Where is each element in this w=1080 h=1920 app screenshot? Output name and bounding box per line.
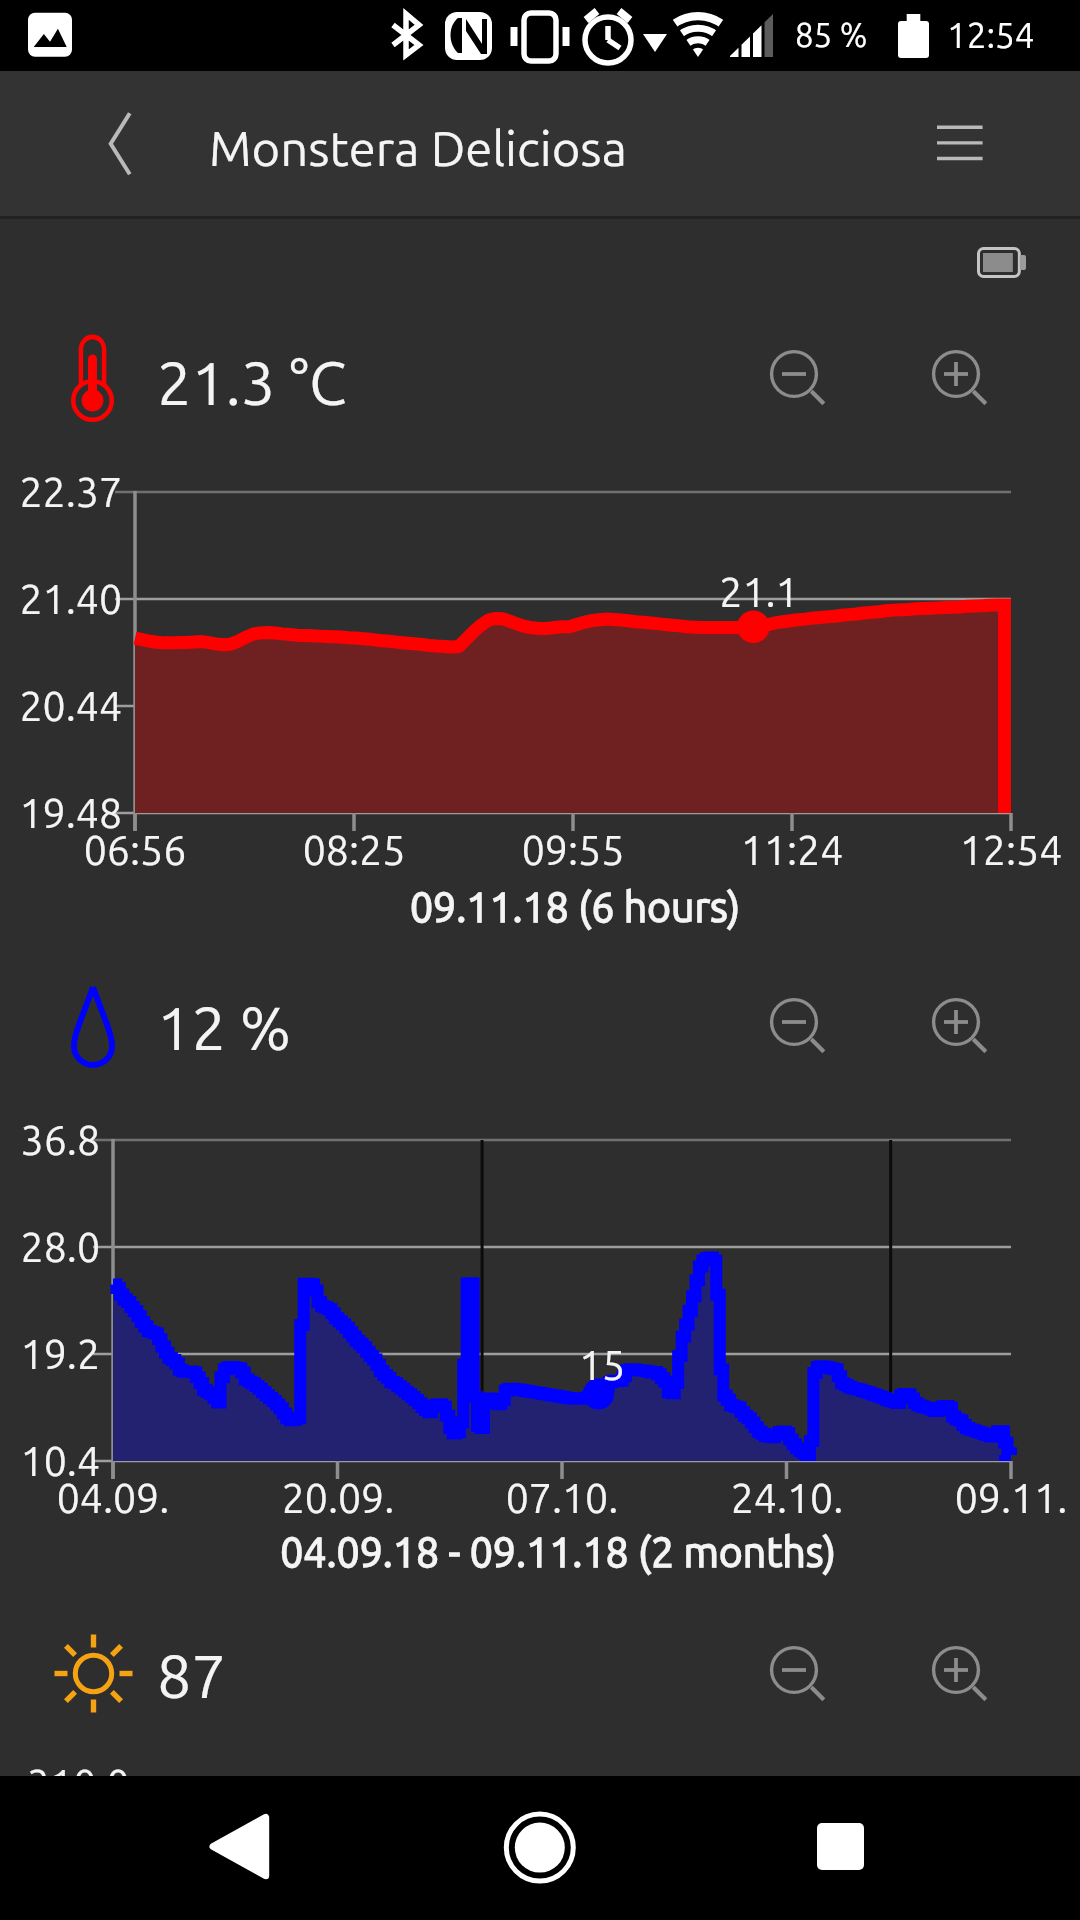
- staticText: 09.11.: [881, 1475, 1080, 1521]
- staticText: 12:54: [947, 15, 1035, 54]
- staticText: Monstera Deliciosa: [209, 120, 627, 175]
- button[interactable]: Zoom out: [771, 999, 833, 1061]
- staticText: 28.0: [0, 1224, 100, 1270]
- staticText: 22.37: [0, 469, 122, 515]
- staticText: 87: [157, 1641, 226, 1709]
- staticText: 20.44: [0, 683, 122, 729]
- staticText: 12 %: [157, 993, 292, 1061]
- button[interactable]: Back: [80, 99, 146, 187]
- staticText: 09.11.18 (6 hours): [35, 884, 1080, 930]
- staticText: 36.8: [0, 1117, 100, 1163]
- staticText: 07.10.: [432, 1475, 692, 1521]
- button[interactable]: Zoom out: [771, 1647, 833, 1709]
- staticText: 08:25: [224, 827, 484, 873]
- staticText: 85 %: [795, 16, 868, 53]
- staticText: 19.2: [0, 1331, 100, 1377]
- staticText: 310.0: [27, 1761, 130, 1807]
- button[interactable]: Home: [500, 1808, 580, 1888]
- staticText: 21.3 °C: [157, 348, 347, 416]
- staticText: 09:55: [443, 827, 703, 873]
- staticText: 21.40: [0, 576, 122, 622]
- button[interactable]: Menu: [930, 111, 990, 171]
- button[interactable]: Recent apps: [817, 1823, 864, 1870]
- staticText: 24.10.: [657, 1475, 917, 1521]
- staticText: 10.4: [0, 1438, 100, 1484]
- button[interactable]: Zoom in: [933, 999, 995, 1061]
- button[interactable]: Zoom in: [933, 1647, 995, 1709]
- button[interactable]: Battery: [977, 247, 1026, 278]
- staticText: 20.09.: [208, 1475, 468, 1521]
- staticText: 11:24: [662, 827, 922, 873]
- button[interactable]: Zoom out: [771, 351, 833, 413]
- staticText: 04.09.18 - 09.11.18 (2 months): [18, 1529, 1080, 1575]
- staticText: 15: [502, 1342, 702, 1388]
- staticText: 12:54: [881, 827, 1080, 873]
- button[interactable]: Back: [203, 1807, 276, 1876]
- staticText: 21.1: [659, 569, 859, 615]
- staticText: 04.09.: [0, 1475, 243, 1521]
- button[interactable]: Zoom in: [933, 351, 995, 413]
- staticText: 19.48: [0, 790, 122, 836]
- staticText: 06:56: [5, 827, 265, 873]
